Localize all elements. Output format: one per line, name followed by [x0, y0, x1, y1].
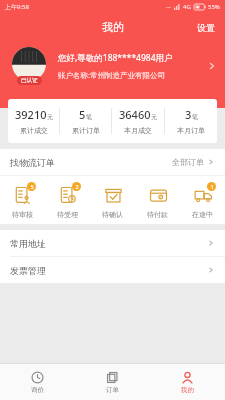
button[interactable]: 3	[165, 107, 217, 135]
staticText: 待付款	[147, 210, 168, 219]
staticText: 待审核	[12, 210, 33, 219]
button[interactable]: 5	[0, 182, 45, 219]
staticText: 询价	[31, 386, 44, 394]
button[interactable]: 发票管理	[0, 257, 225, 283]
staticText: 3	[185, 107, 192, 122]
staticText: 待受理	[57, 210, 78, 219]
staticText: 2	[75, 183, 79, 190]
staticText: 本月订单	[177, 126, 205, 135]
staticText: 1	[210, 183, 214, 190]
staticText: 累计订单	[72, 126, 100, 135]
button[interactable]: 设置	[187, 18, 225, 37]
button[interactable]: 常用地址	[0, 230, 225, 256]
button[interactable]: 找物流订单	[0, 149, 225, 175]
button[interactable]: 39210	[8, 107, 59, 135]
button[interactable]: 询价	[0, 364, 75, 400]
staticText: 订单	[106, 386, 119, 394]
button[interactable]: 1	[180, 182, 225, 219]
button[interactable]: 已认证	[0, 40, 225, 92]
button[interactable]: 我的	[150, 364, 225, 400]
staticText: 常用地址	[10, 238, 46, 249]
staticText: 5	[79, 107, 86, 122]
staticText: 笔	[86, 113, 92, 121]
staticText: 账户名称:常州制造产业有限公司	[58, 70, 166, 80]
button[interactable]: 2	[45, 182, 90, 219]
staticText: 36460	[119, 107, 151, 122]
staticText: 待确认	[102, 210, 123, 219]
staticText: 我的	[181, 386, 194, 394]
staticText: 4G	[183, 3, 191, 11]
staticText: 我的	[102, 20, 124, 34]
staticText: 元	[47, 113, 53, 121]
button[interactable]: 订单	[75, 364, 150, 400]
button[interactable]: 待确认	[90, 182, 135, 219]
staticText: 元	[151, 113, 157, 121]
staticText: 发票管理	[10, 265, 46, 276]
staticText: 39210	[15, 107, 47, 122]
staticText: ···	[166, 3, 171, 11]
staticText: 在途中	[192, 210, 213, 219]
staticText: 累计成交	[20, 126, 48, 135]
staticText: 上午9:58	[5, 3, 29, 11]
staticText: 55%	[208, 3, 220, 11]
staticText: 5	[30, 183, 34, 190]
button[interactable]: 5	[60, 107, 111, 135]
staticText: 您好,尊敬的188****4984用户	[58, 52, 173, 64]
staticText: 笔	[192, 113, 198, 121]
button[interactable]: 待付款	[135, 182, 180, 219]
staticText: 设置	[197, 22, 215, 33]
staticText: 全部订单	[172, 157, 204, 167]
staticText: 已认证	[21, 77, 38, 84]
staticText: 本月成交	[124, 126, 152, 135]
button[interactable]: 36460	[112, 107, 164, 135]
staticText: 找物流订单	[10, 157, 55, 168]
